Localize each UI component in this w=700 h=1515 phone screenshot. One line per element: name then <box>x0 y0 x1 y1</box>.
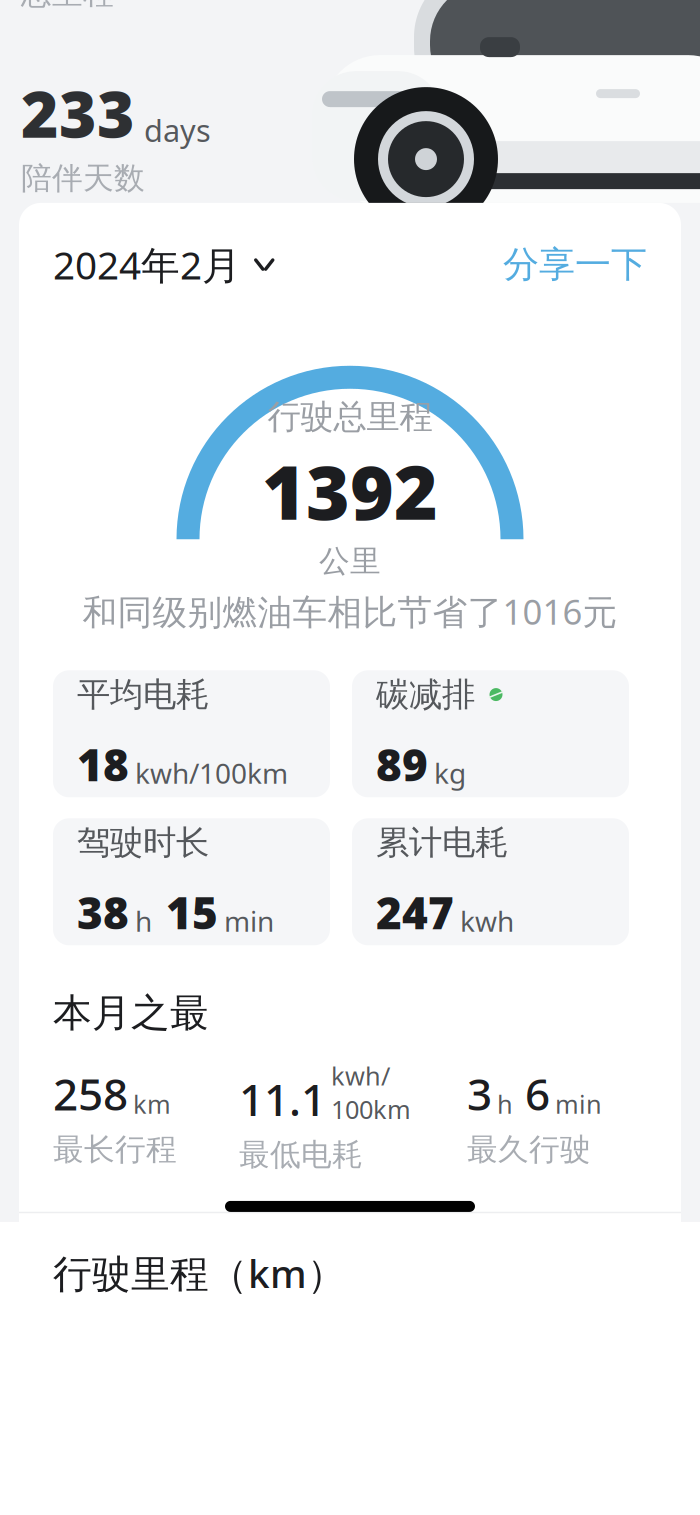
staticText: h <box>497 1087 513 1121</box>
button[interactable]: 2024年2月 <box>53 233 275 296</box>
staticText: 本月之最 <box>53 989 209 1037</box>
staticText: 38 <box>77 883 129 941</box>
staticText: 碳减排 <box>376 674 475 715</box>
staticText: 最久行驶 <box>467 1131 591 1168</box>
staticText: kwh <box>460 902 514 939</box>
staticText: kg <box>434 754 466 791</box>
staticText: 258 <box>53 1064 128 1123</box>
button[interactable]: 分享一下 <box>503 236 647 293</box>
staticText: 和同级别燃油车相比节省了1016元 <box>82 588 617 634</box>
staticText: kwh/100km <box>331 1059 411 1126</box>
staticText: 公里 <box>319 542 381 580</box>
staticText: 平均电耗 <box>77 674 209 715</box>
staticText: kwh/100km <box>135 754 288 791</box>
staticText: 247 <box>376 883 454 941</box>
staticText: 15 <box>166 883 218 941</box>
staticText: days <box>144 110 211 150</box>
staticText: 行驶里程（km） <box>53 1247 346 1298</box>
staticText: 驾驶时长 <box>77 822 209 863</box>
staticText: 11.1 <box>239 1070 326 1128</box>
staticText: 89 <box>376 735 428 793</box>
staticText: km <box>133 1087 171 1121</box>
staticText: 3 <box>467 1064 492 1123</box>
staticText: 陪伴天数 <box>21 159 145 197</box>
staticText: 行驶总里程 <box>267 396 432 437</box>
staticText: min <box>224 902 274 939</box>
staticText: 233 <box>21 70 135 155</box>
staticText: 累计电耗 <box>376 822 508 863</box>
staticText: h <box>135 902 152 939</box>
staticText: 18 <box>77 735 129 793</box>
staticText: 最低电耗 <box>239 1136 363 1174</box>
staticText: 分享一下 <box>503 242 647 287</box>
staticText: min <box>555 1087 602 1121</box>
staticText: 2024年2月 <box>53 239 241 290</box>
staticText: 1392 <box>262 441 438 540</box>
staticText: 6 <box>525 1064 550 1123</box>
staticText: 最长行程 <box>53 1131 177 1168</box>
staticText: 总里程 <box>21 0 114 13</box>
